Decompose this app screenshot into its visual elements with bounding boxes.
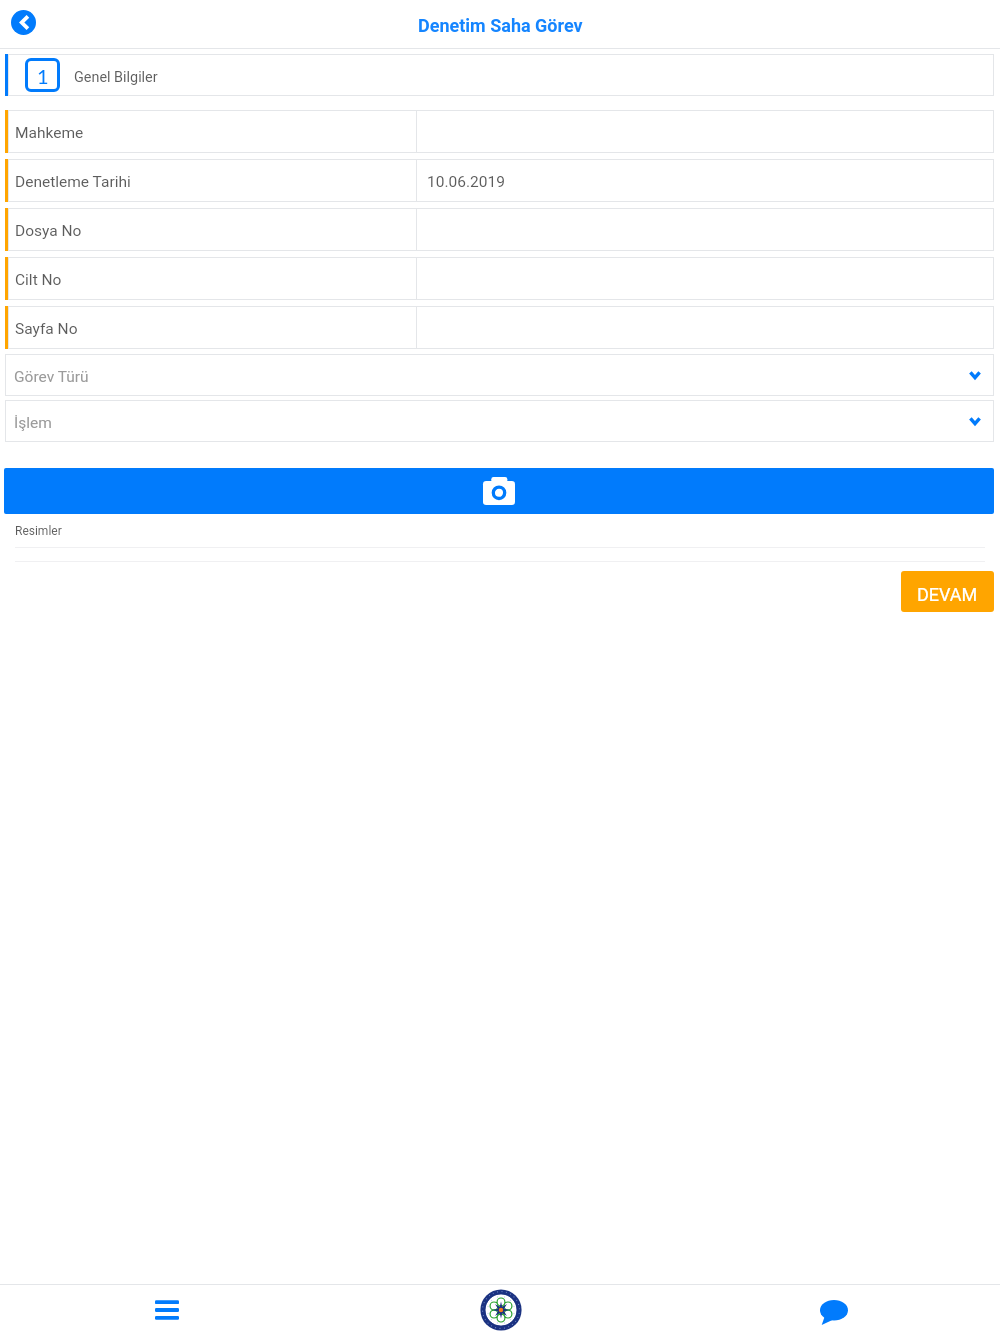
staticText: Mahkeme — [15, 124, 84, 142]
staticText: Denetleme Tarihi — [15, 173, 131, 191]
staticText: Resimler — [15, 524, 62, 538]
button[interactable]: 1 — [5, 54, 994, 96]
staticText: Sayfa No — [15, 320, 78, 338]
button[interactable]: Menu — [0, 1285, 334, 1334]
staticText: Dosya No — [15, 222, 82, 240]
button[interactable]: Görev Türü — [5, 354, 994, 396]
staticText: 1 — [37, 64, 49, 88]
staticText: İşlem — [14, 414, 52, 432]
button[interactable]: Take photo — [4, 468, 994, 514]
staticText: Denetim Saha Görev — [418, 15, 583, 36]
staticText: DEVAM — [917, 584, 978, 605]
staticText: Cilt No — [15, 271, 62, 289]
staticText: Genel Bilgiler — [74, 69, 158, 86]
button[interactable]: DEVAM — [901, 571, 994, 612]
button[interactable]: Mahkeme — [5, 110, 994, 153]
staticText: 10.06.2019 — [427, 173, 505, 191]
button[interactable]: Back — [11, 10, 36, 35]
button[interactable]: Cilt No — [5, 257, 994, 300]
button[interactable]: Denetleme Tarihi — [5, 159, 994, 202]
button[interactable]: Dosya No — [5, 208, 994, 251]
button[interactable]: Home — [334, 1285, 667, 1334]
button[interactable]: Messages — [667, 1285, 1000, 1334]
button[interactable]: Sayfa No — [5, 306, 994, 349]
button[interactable]: İşlem — [5, 400, 994, 442]
staticText: Görev Türü — [14, 368, 89, 386]
